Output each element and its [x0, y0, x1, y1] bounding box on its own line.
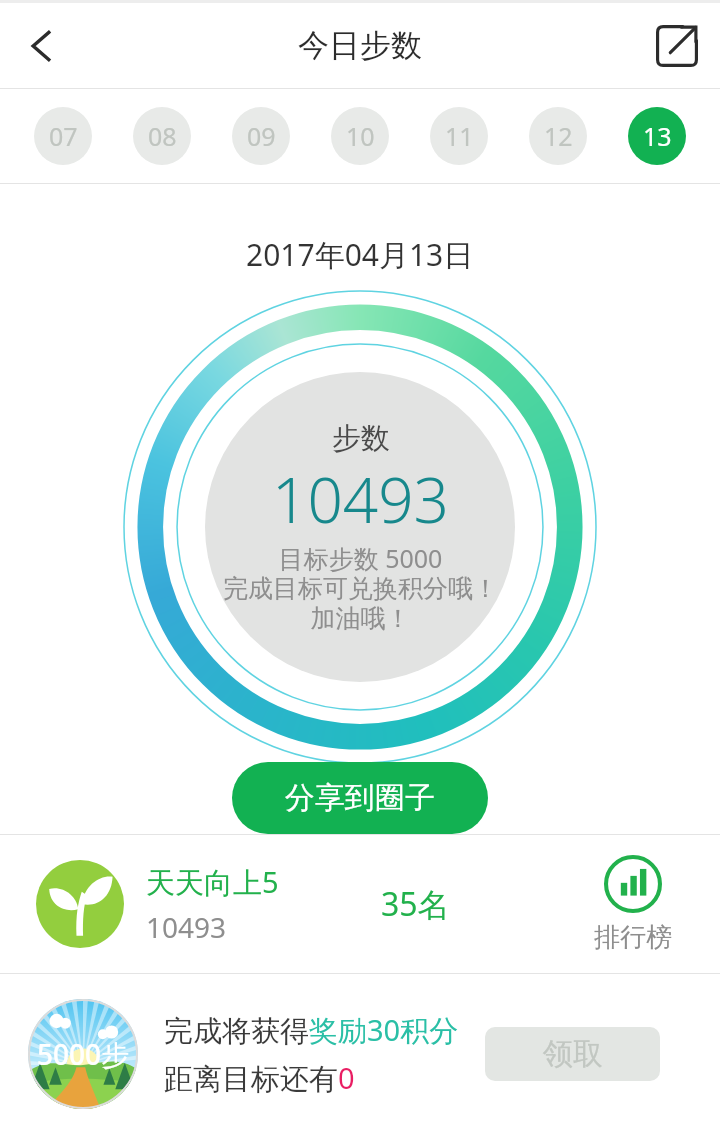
staticText: 完成将获得奖励30积分 [164, 1010, 459, 1050]
staticText: 08 [148, 119, 177, 153]
staticText: 13 [643, 119, 672, 153]
staticText: 09 [247, 119, 276, 153]
button[interactable]: 分享到圈子 [232, 762, 488, 834]
button[interactable]: Back [0, 4, 84, 88]
staticText: 排行榜 [594, 921, 672, 954]
staticText: 分享到圈子 [285, 779, 435, 817]
staticText: 今日步数 [298, 26, 422, 65]
button[interactable]: 08 [133, 107, 191, 165]
staticText: 07 [49, 119, 78, 153]
staticText: 10493 [146, 908, 227, 946]
staticText: 12 [544, 119, 573, 153]
button[interactable]: 领取 [485, 1027, 660, 1081]
button[interactable]: 11 [430, 107, 488, 165]
staticText: 5000步 [37, 1035, 130, 1073]
staticText: 目标步数 5000 完成目标可兑换积分哦！ 加油哦！ [223, 541, 498, 635]
staticText: 10 [346, 119, 375, 153]
staticText: 步数 [332, 420, 390, 457]
staticText: 35名 [381, 882, 450, 926]
staticText: 距离目标还有0 [164, 1058, 355, 1098]
staticText: 天天向上5 [146, 862, 279, 902]
button[interactable]: Share [634, 3, 720, 88]
staticText: 10493 [272, 457, 450, 541]
button[interactable]: 13 [628, 107, 686, 165]
button[interactable]: 12 [529, 107, 587, 165]
staticText: 领取 [543, 1035, 603, 1073]
button[interactable]: 10 [331, 107, 389, 165]
staticText: 11 [445, 119, 474, 153]
button[interactable]: 排行榜 [582, 849, 684, 960]
button[interactable]: 07 [34, 107, 92, 165]
staticText: 2017年04月13日 [246, 234, 474, 275]
button[interactable]: 09 [232, 107, 290, 165]
